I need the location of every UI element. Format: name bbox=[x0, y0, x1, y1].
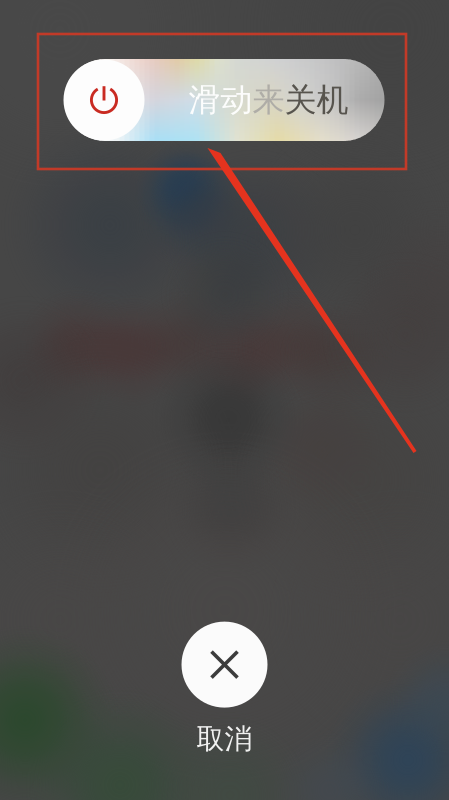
staticText: 滑动 bbox=[188, 80, 252, 120]
staticText: 来 bbox=[252, 80, 284, 120]
staticText: 取消 bbox=[196, 722, 252, 756]
button[interactable]: 取消 bbox=[181, 622, 267, 756]
button[interactable]: 滑动 bbox=[64, 59, 384, 141]
staticText: 关机 bbox=[284, 80, 348, 120]
